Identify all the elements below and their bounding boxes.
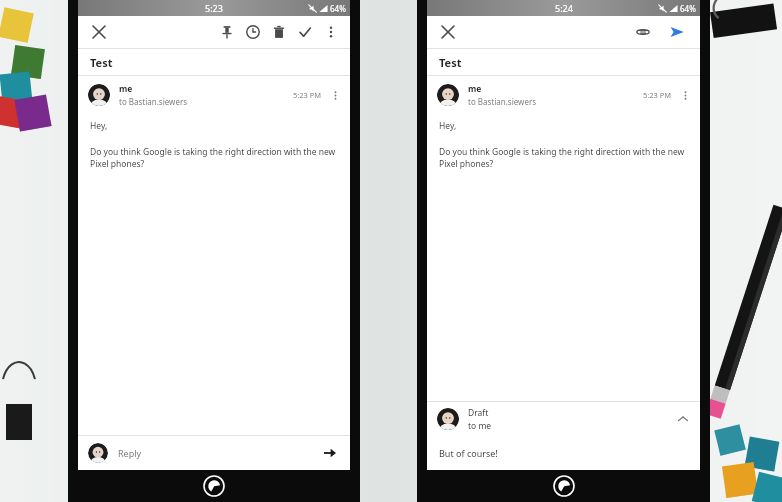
staticText: me	[468, 83, 482, 95]
button[interactable]: Attach	[630, 19, 656, 45]
staticText: 5:23 PM	[293, 90, 322, 100]
staticText: 64%	[330, 3, 346, 14]
staticText: 5:23 PM	[643, 90, 672, 100]
staticText: Do you think Google is taking the right …	[439, 146, 688, 170]
staticText: me	[119, 83, 133, 95]
button[interactable]: Send	[664, 19, 690, 45]
button[interactable]: Pin	[214, 19, 240, 45]
staticText: 5:23	[205, 2, 223, 14]
button[interactable]: Reply	[88, 436, 340, 470]
button[interactable]: Done	[292, 19, 318, 45]
button[interactable]: me	[88, 76, 344, 114]
button[interactable]: Send reply	[320, 443, 340, 463]
button[interactable]: Close	[437, 21, 459, 43]
staticText: Hey,	[90, 120, 108, 132]
staticText: 5:24	[555, 2, 573, 14]
button[interactable]: More options	[676, 86, 694, 104]
button[interactable]: More options	[318, 19, 344, 45]
staticText: to Bastian.siewers	[468, 96, 537, 107]
staticText: Test	[439, 55, 462, 70]
staticText: Test	[90, 55, 113, 70]
button[interactable]: Home	[204, 476, 224, 496]
staticText: But of course!	[439, 447, 498, 459]
staticText: Do you think Google is taking the right …	[90, 146, 338, 170]
button[interactable]: me	[437, 76, 694, 114]
staticText: Reply	[118, 447, 142, 459]
staticText: to me	[468, 420, 492, 432]
staticText: Hey,	[439, 120, 457, 132]
staticText: 64%	[680, 3, 696, 14]
button[interactable]: More options	[326, 86, 344, 104]
staticText: to Bastian.siewers	[119, 96, 188, 107]
button[interactable]: Home	[554, 476, 574, 496]
button[interactable]: Draft	[437, 402, 692, 436]
button[interactable]: Collapse	[674, 410, 692, 428]
button[interactable]: Snooze	[240, 19, 266, 45]
staticText: Draft	[468, 407, 489, 419]
button[interactable]: Delete	[266, 19, 292, 45]
button[interactable]: Close	[88, 21, 110, 43]
